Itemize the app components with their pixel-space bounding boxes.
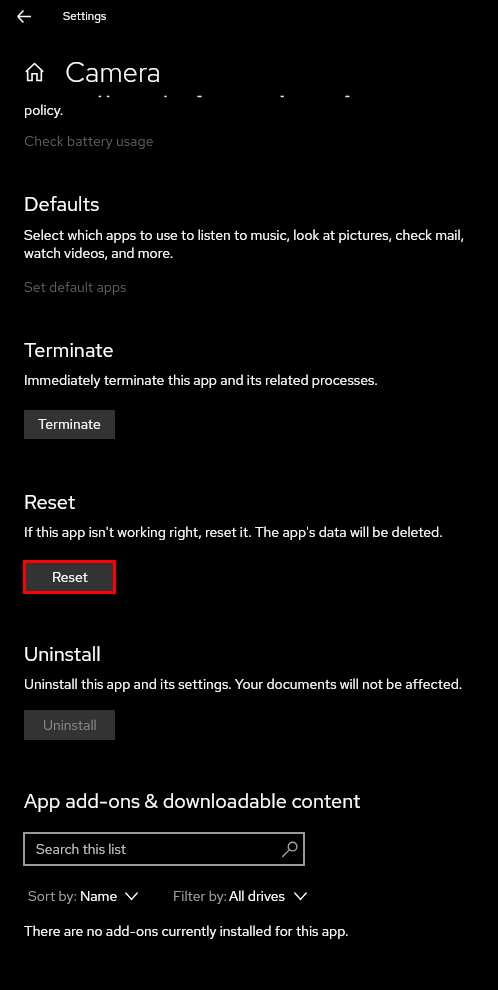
staticText: Uninstall <box>43 716 97 735</box>
staticText: Terminate <box>38 415 101 434</box>
staticText: Camera <box>65 53 161 90</box>
button[interactable]: Reset <box>23 560 116 594</box>
staticText: Filter by: <box>173 887 228 906</box>
button[interactable]: Sort by: <box>22 885 142 907</box>
staticText: Terminate <box>24 337 114 363</box>
button[interactable]: Terminate <box>24 410 115 439</box>
staticText: watch videos, and more. <box>24 244 174 263</box>
button[interactable]: Filter by: <box>167 885 312 907</box>
staticText: Sort by: <box>28 887 77 906</box>
staticText: App add-ons & downloadable content <box>24 788 361 814</box>
staticText: There are no add-ons currently installed… <box>24 922 349 941</box>
staticText: Reset <box>24 489 76 515</box>
staticText: Search this list <box>36 840 126 859</box>
staticText: Immediately terminate this app and its r… <box>24 371 378 390</box>
staticText: All drives <box>229 887 285 906</box>
staticText: If this app isn't working right, reset i… <box>24 523 443 542</box>
button[interactable]: Back <box>8 2 40 30</box>
button[interactable]: Uninstall <box>24 710 115 740</box>
staticText: Uninstall <box>24 641 101 667</box>
staticText: policy. <box>24 101 64 120</box>
staticText: Name <box>80 887 118 906</box>
staticText: Reset <box>52 568 88 587</box>
staticText: Defaults <box>24 191 100 217</box>
staticText: Uninstall this app and its settings. You… <box>24 675 463 694</box>
staticText: Settings <box>63 8 107 23</box>
staticText: Select which apps to use to listen to mu… <box>24 226 465 245</box>
other: Search <box>283 841 299 857</box>
button[interactable]: Set default apps <box>24 278 127 297</box>
button[interactable]: Home <box>20 57 48 85</box>
button[interactable]: Search this list <box>24 833 304 865</box>
button[interactable]: Check battery usage <box>24 132 154 151</box>
